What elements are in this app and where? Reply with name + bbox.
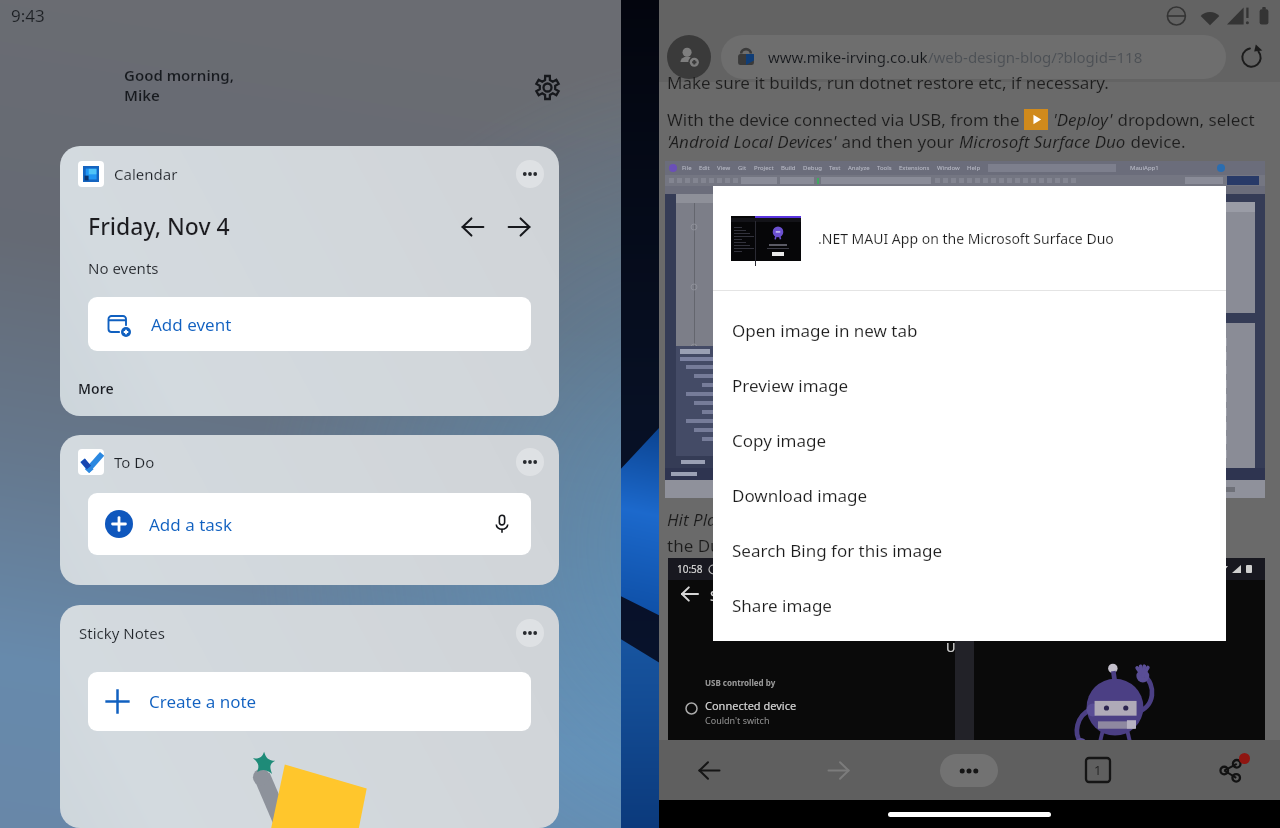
staticText: 'Deploy' (1053, 108, 1113, 131)
staticText: Calendar (114, 164, 178, 184)
button[interactable]: www.mike-irving.co.uk (721, 35, 1226, 79)
staticText: www.mike-irving.co.uk (768, 47, 928, 67)
button[interactable]: More (78, 379, 114, 398)
staticText: No events (88, 258, 159, 278)
staticText: Help (967, 164, 981, 172)
staticText: /web-design-blog/?blogid=118 (928, 47, 1143, 67)
button[interactable]: Add a task (88, 493, 531, 555)
button[interactable]: More options (516, 619, 544, 647)
staticText: and then your (837, 130, 959, 153)
staticText: Test (829, 164, 841, 172)
staticText: Make sure it builds, run dotnet restore … (667, 71, 1109, 94)
staticText: Preview image (732, 374, 849, 397)
staticText: dropdown, select (1113, 108, 1255, 131)
staticText: Couldn't switch (705, 714, 770, 726)
staticText: Share image (732, 594, 832, 617)
button[interactable]: Download image (713, 468, 1226, 523)
staticText: Tools (877, 164, 892, 172)
button[interactable]: Tabs (1070, 740, 1126, 800)
staticText: View (717, 164, 731, 172)
staticText: Debug (803, 164, 822, 172)
staticText: 'Android Local Devices' (667, 130, 837, 153)
staticText: Connected device (705, 698, 797, 713)
button[interactable]: Share image (713, 578, 1226, 633)
staticText: Window (937, 164, 960, 172)
button[interactable]: Voice input (485, 507, 519, 541)
staticText: File (682, 164, 692, 172)
staticText: Open image in new tab (732, 319, 918, 342)
staticText: 10:58 (677, 562, 703, 576)
staticText: Create a note (149, 690, 257, 713)
button[interactable]: Previous day (456, 210, 490, 244)
staticText: With the device connected via USB, from … (667, 108, 1024, 131)
staticText: 1 (1094, 761, 1102, 779)
button[interactable]: Create a note (88, 672, 531, 731)
staticText: Add a task (149, 513, 233, 536)
staticText: S (710, 586, 718, 605)
button[interactable]: Preview image (713, 358, 1226, 413)
staticText: device. (1126, 130, 1186, 153)
staticText: .NET MAUI App on the Microsoft Surface D… (818, 229, 1114, 248)
button[interactable]: Next day (502, 210, 536, 244)
staticText: Mike (124, 85, 160, 105)
staticText: Good morning, (124, 65, 234, 85)
button[interactable]: Share (1203, 740, 1259, 800)
staticText: Sticky Notes (79, 623, 165, 643)
button[interactable]: Add event (88, 297, 531, 351)
button[interactable]: Search Bing for this image (713, 523, 1226, 578)
staticText: Add event (151, 313, 232, 336)
staticText: Extensions (899, 164, 930, 172)
button[interactable]: Copy image (713, 413, 1226, 468)
staticText: Friday, Nov 4 (88, 210, 230, 241)
button[interactable]: Menu (940, 740, 998, 800)
staticText: 9:43 (11, 4, 45, 27)
staticText: Microsoft Surface Duo (959, 130, 1126, 153)
staticText: USB controlled by (705, 677, 776, 688)
staticText: To Do (114, 452, 155, 472)
staticText: Copy image (732, 429, 827, 452)
staticText: Analyze (848, 164, 870, 172)
button[interactable]: Profile (667, 35, 711, 79)
button[interactable]: Forward (810, 740, 866, 800)
button[interactable]: More options (516, 160, 544, 188)
staticText: Hit Play (667, 508, 725, 531)
button[interactable]: Open image in new tab (713, 303, 1226, 358)
staticText: Download image (732, 484, 868, 507)
staticText: Git (738, 164, 747, 172)
staticText: the Duo. (667, 534, 736, 557)
button[interactable]: Reload (1230, 36, 1272, 78)
button[interactable]: Back (681, 740, 737, 800)
staticText: Project (754, 164, 774, 172)
staticText: Search Bing for this image (732, 539, 943, 562)
staticText: Edit (699, 164, 710, 172)
button[interactable]: Settings (527, 67, 567, 107)
staticText: MauiApp1 (1130, 164, 1159, 172)
button[interactable]: More options (516, 448, 544, 476)
staticText: USB (946, 638, 972, 656)
staticText: Build (781, 164, 796, 172)
